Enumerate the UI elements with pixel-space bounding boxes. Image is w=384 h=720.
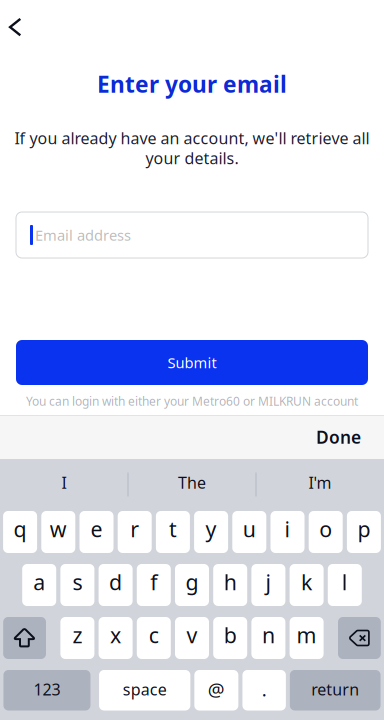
staticText: @ — [208, 677, 225, 702]
button[interactable]: i — [270, 511, 304, 553]
staticText: i — [284, 515, 290, 543]
button[interactable]: e — [79, 511, 113, 553]
staticText: . — [262, 677, 267, 702]
button[interactable]: u — [232, 511, 266, 553]
staticText: j — [265, 568, 271, 596]
staticText: Done — [316, 425, 361, 448]
staticText: m — [297, 621, 317, 649]
staticText: Email address — [35, 225, 131, 245]
button[interactable]: Back — [0, 5, 37, 49]
button[interactable]: The — [128, 459, 255, 505]
button[interactable]: n — [251, 617, 285, 659]
staticText: 123 — [33, 679, 60, 700]
button[interactable]: Done — [316, 413, 384, 460]
staticText: l — [342, 568, 348, 596]
button[interactable]: p — [347, 511, 381, 553]
button[interactable]: I — [0, 459, 127, 505]
staticText: b — [224, 621, 237, 649]
button[interactable]: r — [118, 511, 152, 553]
button[interactable]: a — [22, 564, 56, 606]
button[interactable]: z — [60, 617, 94, 659]
button[interactable]: s — [60, 564, 94, 606]
button[interactable]: space — [99, 670, 190, 710]
button[interactable]: 123 — [3, 670, 90, 710]
button[interactable]: k — [290, 564, 324, 606]
button[interactable]: o — [309, 511, 343, 553]
staticText: Enter your email — [97, 69, 287, 99]
staticText: e — [90, 515, 102, 543]
staticText: I'm — [308, 472, 331, 493]
button[interactable]: Submit — [16, 340, 368, 385]
staticText: d — [109, 568, 122, 596]
staticText: Submit — [167, 353, 216, 372]
staticText: k — [301, 568, 312, 596]
button[interactable]: d — [99, 564, 133, 606]
staticText: q — [14, 515, 27, 543]
staticText: s — [72, 568, 82, 596]
staticText: w — [50, 515, 67, 543]
button[interactable]: return — [290, 670, 381, 710]
staticText: You can login with either your Metro60 o… — [26, 393, 358, 409]
button[interactable]: l — [328, 564, 362, 606]
button[interactable]: c — [137, 617, 171, 659]
staticText: o — [319, 515, 332, 543]
staticText: return — [311, 679, 359, 700]
button[interactable]: j — [251, 564, 285, 606]
button[interactable]: I'm — [256, 459, 383, 505]
button[interactable]: y — [194, 511, 228, 553]
staticText: The — [178, 472, 206, 493]
button[interactable]: f — [137, 564, 171, 606]
button[interactable]: g — [175, 564, 209, 606]
staticText: r — [130, 515, 139, 543]
button[interactable]: x — [99, 617, 133, 659]
staticText: p — [357, 515, 370, 543]
staticText: y — [206, 515, 217, 543]
staticText: u — [243, 515, 256, 543]
staticText: f — [150, 568, 157, 596]
staticText: h — [224, 568, 237, 596]
staticText: g — [185, 568, 198, 596]
button[interactable]: m — [290, 617, 324, 659]
staticText: z — [72, 621, 82, 649]
button[interactable]: q — [3, 511, 37, 553]
button[interactable]: t — [156, 511, 190, 553]
staticText: c — [149, 621, 159, 649]
button[interactable]: Delete — [338, 617, 381, 659]
staticText: If you already have an account, we'll re… — [14, 127, 369, 149]
button[interactable]: . — [242, 670, 286, 710]
button[interactable]: @ — [194, 670, 238, 710]
staticText: t — [169, 515, 177, 543]
staticText: a — [33, 568, 45, 596]
button[interactable]: b — [213, 617, 247, 659]
staticText: space — [123, 679, 167, 700]
button[interactable]: w — [41, 511, 75, 553]
staticText: n — [262, 621, 275, 649]
staticText: I — [61, 472, 66, 493]
button[interactable]: v — [175, 617, 209, 659]
staticText: x — [110, 621, 121, 649]
staticText: your details. — [145, 147, 238, 169]
staticText: v — [186, 621, 197, 649]
button[interactable]: h — [213, 564, 247, 606]
button[interactable]: Shift — [3, 617, 46, 659]
